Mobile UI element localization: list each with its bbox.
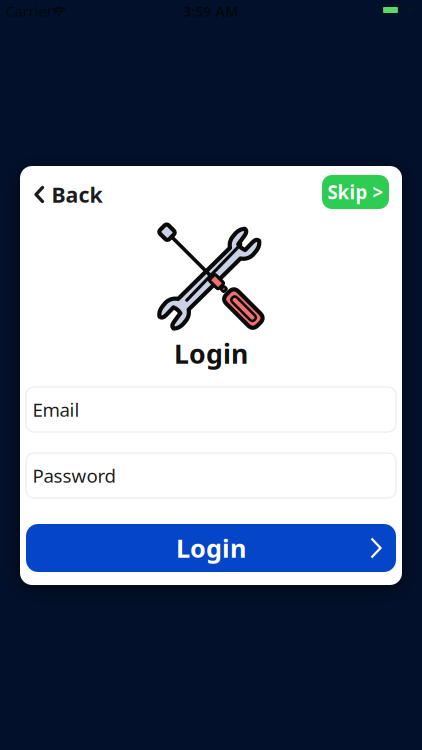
staticText: Login — [176, 531, 246, 565]
button[interactable]: Password — [26, 453, 396, 498]
staticText: Back — [51, 180, 102, 209]
staticText: Carrier — [5, 1, 52, 21]
button[interactable]: Back — [30, 176, 106, 212]
button[interactable]: Email — [26, 387, 396, 432]
staticText: 3:59 AM — [183, 1, 239, 21]
staticText: Password — [32, 463, 115, 488]
staticText: Login — [174, 336, 248, 371]
staticText: Email — [32, 397, 79, 422]
button[interactable]: Login — [26, 524, 396, 572]
button[interactable]: Skip > — [322, 175, 389, 209]
staticText: Skip > — [327, 180, 383, 204]
